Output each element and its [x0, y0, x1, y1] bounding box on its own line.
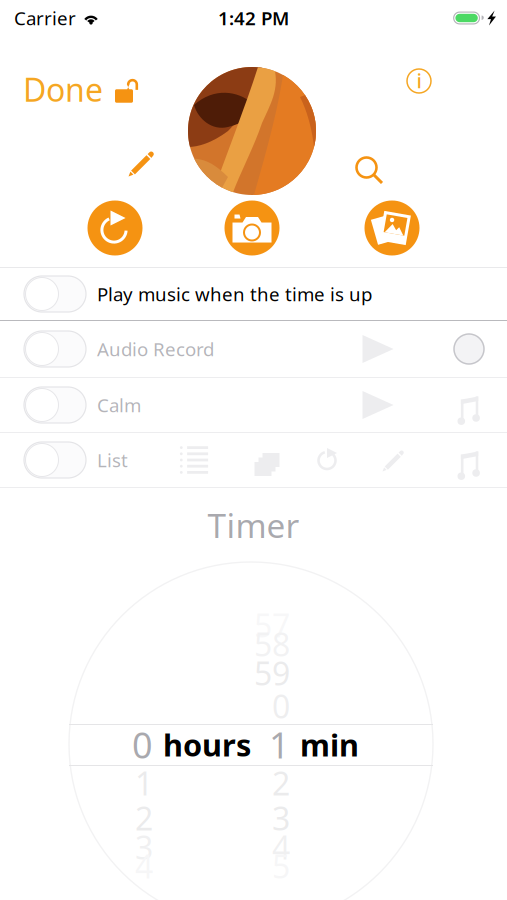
staticText: 59 [254, 652, 290, 694]
staticText: 4 [135, 845, 153, 887]
button[interactable]: Audio Record toggle [0, 327, 97, 371]
button[interactable]: Photo library [361, 197, 423, 259]
staticText: Audio Record [97, 337, 214, 361]
button[interactable]: List toggle [0, 438, 97, 482]
staticText: 3 [272, 797, 290, 839]
staticText: 3 [135, 826, 153, 868]
button[interactable]: Calm toggle [0, 383, 97, 427]
staticText: 4 [272, 826, 290, 868]
staticText: 0 [272, 685, 290, 727]
button[interactable]: Search [347, 148, 386, 187]
button[interactable]: Play music when the time is up toggle [0, 272, 97, 316]
button[interactable]: Camera [221, 197, 283, 259]
button[interactable]: Edit [122, 142, 162, 185]
staticText: 58 [254, 623, 290, 665]
staticText: Timer [207, 503, 299, 547]
staticText: i [416, 67, 421, 94]
staticText: 1 [135, 762, 153, 804]
staticText: Play music when the time is up [97, 282, 372, 306]
button[interactable]: Refresh [84, 197, 146, 259]
staticText: Done [23, 68, 103, 110]
staticText: 1:42 PM [218, 6, 289, 30]
staticText: 5 [272, 845, 290, 887]
staticText: 57 [254, 604, 290, 646]
staticText: Calm [97, 393, 141, 417]
staticText: 0 [132, 721, 153, 768]
button[interactable]: Done [17, 62, 147, 116]
staticText: hours [163, 724, 251, 765]
staticText: Carrier [14, 6, 76, 30]
staticText: 2 [272, 762, 290, 804]
staticText: min [300, 724, 359, 765]
button[interactable]: Info [399, 61, 439, 101]
staticText: List [97, 448, 128, 472]
staticText: 1 [269, 721, 290, 768]
staticText: 2 [135, 797, 153, 839]
